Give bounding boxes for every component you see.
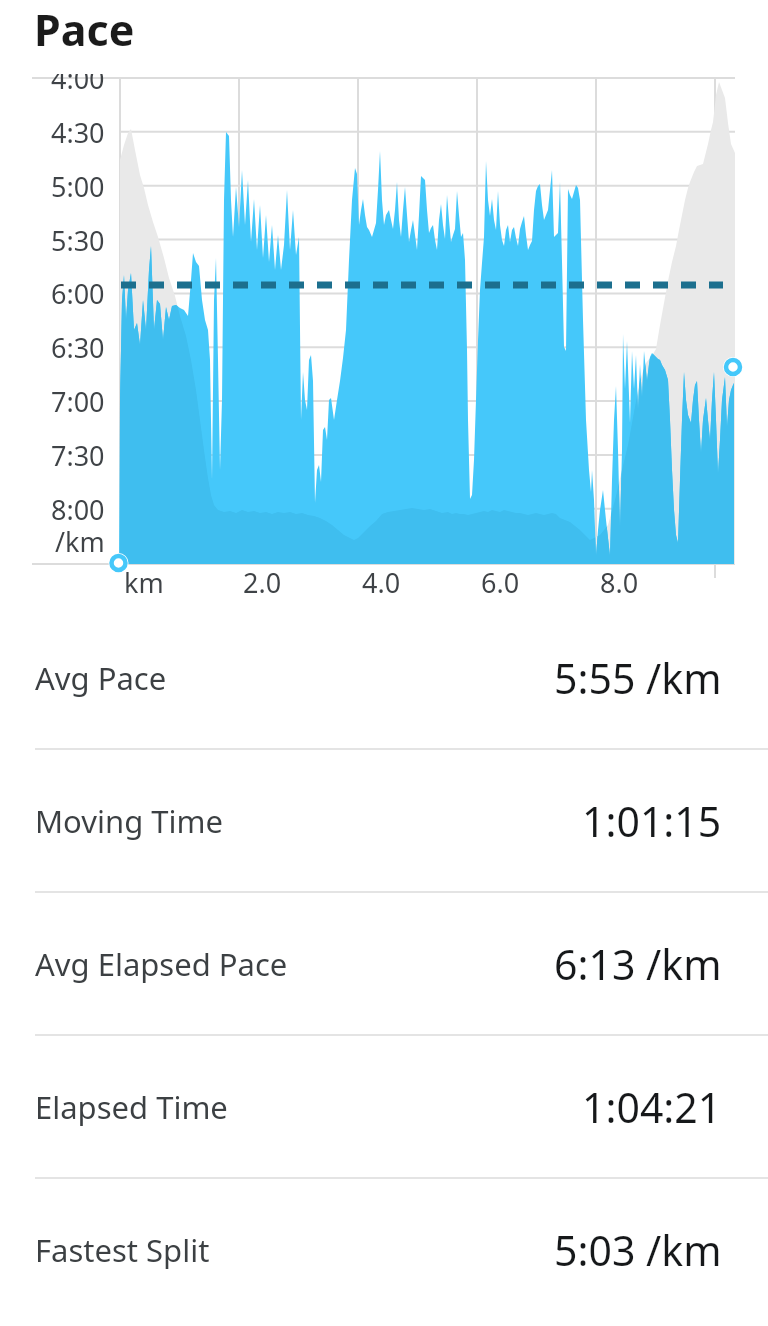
staticText: 4:00	[51, 74, 105, 96]
staticText: Moving Time	[35, 800, 223, 842]
staticText: 6:00	[51, 275, 105, 311]
staticText: 8:00	[51, 491, 105, 527]
staticText: 4:30	[51, 114, 105, 150]
staticText: 4.0	[362, 564, 401, 596]
staticText: 1:04:21	[582, 1079, 722, 1135]
staticText: 5:03 /km	[554, 1222, 722, 1278]
staticText: Avg Pace	[35, 657, 167, 699]
staticText: 5:00	[51, 168, 105, 204]
button[interactable]: Elapsed Time	[35, 1036, 722, 1177]
staticText: 6.0	[481, 564, 520, 596]
staticText: 1:01:15	[582, 793, 722, 849]
staticText: 7:00	[51, 383, 105, 419]
button[interactable]: Avg Pace	[35, 607, 722, 748]
button[interactable]: Avg Elapsed Pace	[35, 893, 722, 1034]
staticText: 5:55 /km	[554, 650, 722, 706]
staticText: Avg Elapsed Pace	[35, 943, 288, 985]
staticText: Elapsed Time	[35, 1086, 228, 1128]
staticText: Pace	[34, 0, 135, 59]
staticText: 2.0	[243, 564, 282, 596]
staticText: km	[124, 564, 164, 596]
staticText: 6:13 /km	[554, 936, 722, 992]
button[interactable]: Fastest Split	[35, 1179, 722, 1320]
staticText: /km	[55, 523, 105, 559]
staticText: 5:30	[51, 222, 105, 258]
staticText: Fastest Split	[35, 1229, 210, 1271]
staticText: 7:30	[51, 437, 105, 473]
button[interactable]: Moving Time	[35, 750, 722, 891]
staticText: 8.0	[600, 564, 639, 596]
staticText: 6:30	[51, 329, 105, 365]
